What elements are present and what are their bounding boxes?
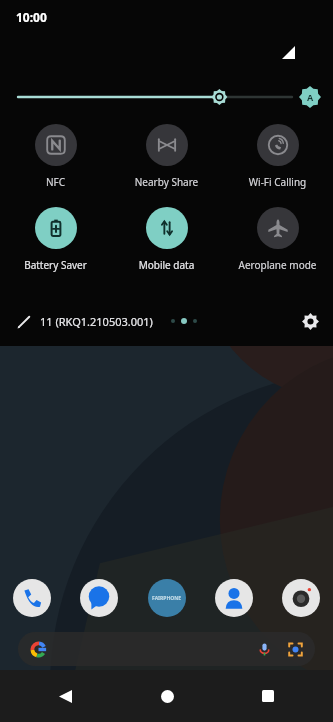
staticText: FAIRPHONE [152, 595, 182, 602]
button[interactable]: Home [148, 677, 186, 715]
staticText: Battery Saver [0, 258, 111, 272]
button[interactable]: Nearby Share [111, 124, 222, 189]
button[interactable]: Battery Saver [0, 207, 111, 272]
staticText: Mobile data [111, 258, 222, 272]
button[interactable]: Google [14, 80, 86, 141]
staticText: 11 (RKQ1.210503.001) [40, 314, 153, 329]
staticText: 10:00 [16, 9, 47, 25]
staticText: Play Sto… [247, 127, 319, 141]
button[interactable]: Recents [249, 677, 287, 715]
staticText: NFC [0, 175, 111, 189]
button[interactable]: Camera [281, 578, 321, 618]
staticText: Nearby Share [111, 175, 222, 189]
button[interactable]: Play Sto… [247, 80, 319, 141]
button[interactable]: Edit tiles [10, 307, 38, 335]
button[interactable]: Auto brightness [0, 84, 333, 110]
staticText: Aeroplane mode [222, 258, 333, 272]
button[interactable]: Aeroplane mode [222, 207, 333, 272]
staticText: Wi-Fi Calling [222, 175, 333, 189]
button[interactable]: Messages [79, 578, 119, 618]
button[interactable]: Wi-Fi Calling [222, 124, 333, 189]
button[interactable]: Phone [12, 578, 52, 618]
staticText: A [307, 91, 314, 103]
staticText: Google [14, 127, 86, 141]
button[interactable]: Auto brightness [299, 86, 321, 108]
button[interactable]: Contacts [214, 578, 254, 618]
button[interactable]: NFC [0, 124, 111, 189]
button[interactable]: Search [18, 632, 315, 666]
button[interactable]: Fairphone [147, 578, 187, 618]
button[interactable]: Mobile data [111, 207, 222, 272]
button[interactable]: Settings [295, 306, 325, 336]
button[interactable]: Back [46, 677, 84, 715]
